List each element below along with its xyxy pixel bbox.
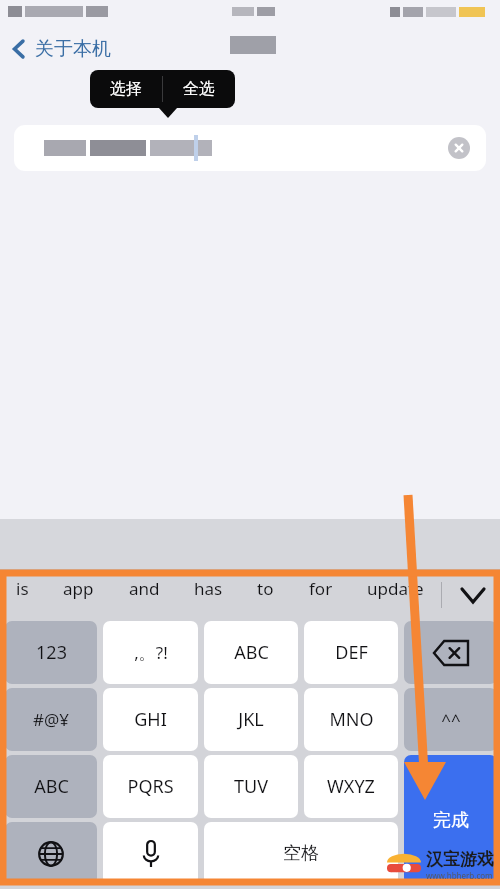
button[interactable]: has <box>192 571 225 606</box>
button[interactable]: for <box>307 571 335 606</box>
button[interactable]: ABC <box>204 621 298 684</box>
button[interactable]: WXYZ <box>304 755 398 818</box>
staticText: 选择 <box>110 79 142 99</box>
staticText: ,。?! <box>134 641 168 664</box>
button[interactable]: #@¥ <box>5 688 97 751</box>
button[interactable]: TUV <box>204 755 298 818</box>
button[interactable]: Clear text <box>14 125 486 171</box>
button[interactable]: GHI <box>103 688 198 751</box>
staticText: MNO <box>329 707 374 732</box>
button[interactable]: 空格 <box>204 822 398 885</box>
button[interactable]: ABC <box>5 755 97 818</box>
staticText: app <box>63 577 94 600</box>
button[interactable]: to <box>255 571 276 606</box>
staticText: ABC <box>234 640 269 665</box>
button[interactable]: update <box>365 571 426 606</box>
button[interactable]: 全选 <box>163 70 235 108</box>
staticText: 完成 <box>433 809 469 832</box>
staticText: has <box>194 577 223 600</box>
button[interactable]: Backspace <box>404 621 497 684</box>
staticText: DEF <box>335 640 368 665</box>
staticText: 关于本机 <box>35 37 111 61</box>
staticText: PQRS <box>127 774 174 799</box>
staticText: www.hbherb.com <box>426 870 493 881</box>
button[interactable]: ,。?! <box>103 621 198 684</box>
staticText: JKL <box>238 707 264 732</box>
button[interactable]: 选择 <box>90 70 162 108</box>
staticText: #@¥ <box>33 708 69 731</box>
button[interactable]: JKL <box>204 688 298 751</box>
button[interactable]: app <box>61 571 96 606</box>
button[interactable]: and <box>127 571 162 606</box>
button[interactable]: Back <box>0 32 125 66</box>
button[interactable]: 123 <box>5 621 97 684</box>
staticText: 空格 <box>283 842 319 865</box>
button[interactable]: Clear text <box>446 135 472 161</box>
staticText: 汉宝游戏 <box>426 849 494 870</box>
button[interactable]: PQRS <box>103 755 198 818</box>
staticText: 123 <box>36 640 67 665</box>
staticText: TUV <box>234 774 268 799</box>
button[interactable]: Voice input <box>103 822 198 885</box>
button[interactable]: Hide keyboard <box>446 571 500 619</box>
staticText: for <box>309 577 333 600</box>
staticText: ^^ <box>441 708 461 731</box>
button[interactable]: Change keyboard <box>5 822 97 885</box>
staticText: is <box>16 577 29 600</box>
staticText: GHI <box>134 707 167 732</box>
staticText: update <box>367 577 424 600</box>
button[interactable]: DEF <box>304 621 398 684</box>
staticText: ABC <box>34 774 69 799</box>
staticText: WXYZ <box>327 774 375 799</box>
button[interactable]: MNO <box>304 688 398 751</box>
button[interactable]: is <box>14 571 31 606</box>
button[interactable]: 完成 <box>404 755 497 885</box>
staticText: to <box>257 577 274 600</box>
staticText: and <box>129 577 160 600</box>
staticText: 全选 <box>183 79 215 99</box>
button[interactable]: ^^ <box>404 688 497 751</box>
